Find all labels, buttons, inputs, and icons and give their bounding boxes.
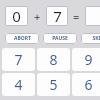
staticText: 5 [49, 75, 58, 94]
staticText: PAUSE [52, 35, 68, 42]
staticText: 9 [84, 50, 93, 69]
button[interactable]: 7 [2, 48, 35, 71]
button[interactable]: SKIP [81, 33, 100, 44]
staticText: ABORT [14, 35, 31, 42]
staticText: SKIP [92, 35, 100, 42]
staticText: 0 [12, 6, 21, 26]
button[interactable]: 8 [37, 48, 70, 71]
staticText: 6 [84, 75, 93, 94]
button[interactable]: 9 [72, 48, 100, 71]
button[interactable]: ABORT [5, 33, 39, 44]
button[interactable]: PAUSE [43, 33, 77, 44]
button[interactable]: 5 [37, 73, 70, 96]
staticText: = [73, 9, 80, 24]
button[interactable]: 6 [72, 73, 100, 96]
staticText: 4 [14, 75, 23, 94]
button[interactable]: 4 [2, 73, 35, 96]
staticText: + [34, 9, 41, 24]
staticText: 7 [53, 6, 62, 26]
staticText: 8 [49, 50, 58, 69]
staticText: 7 [14, 50, 23, 69]
